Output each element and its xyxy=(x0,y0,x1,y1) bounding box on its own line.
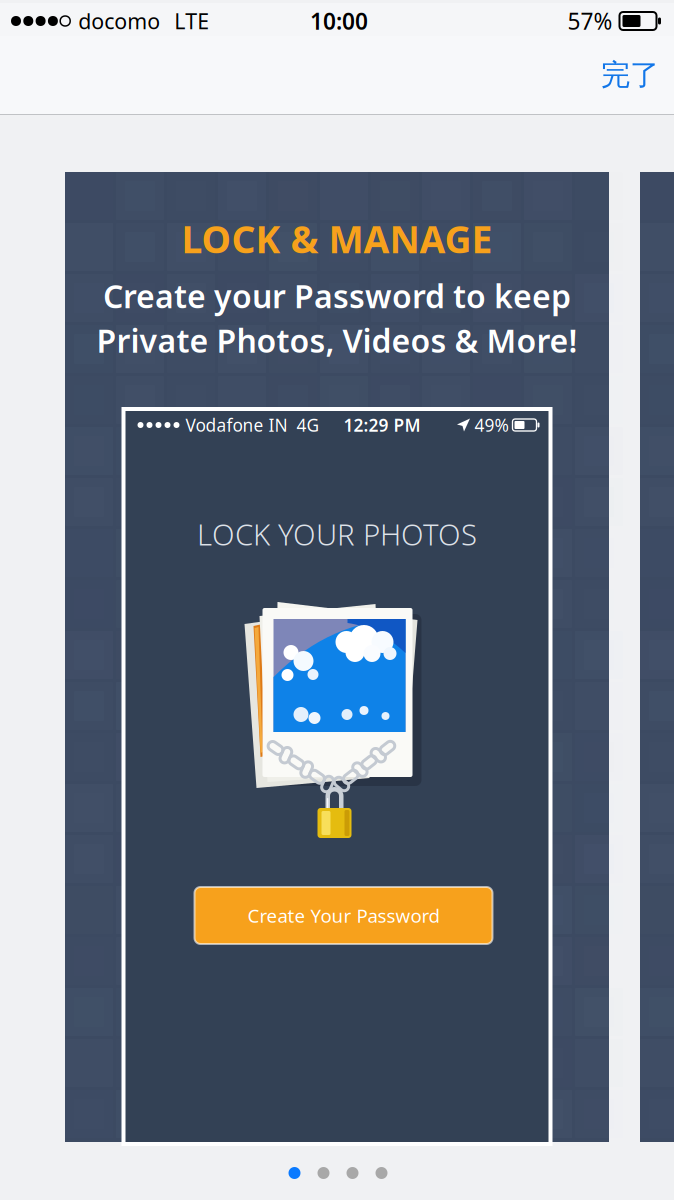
staticText: Create your Password to keep xyxy=(103,275,571,317)
button[interactable]: 完了 xyxy=(573,43,674,107)
staticText: docomo xyxy=(78,7,160,35)
staticText: LOCK YOUR PHOTOS xyxy=(197,514,477,553)
staticText: Vodafone IN xyxy=(185,413,287,436)
staticText: 10:00 xyxy=(310,6,368,36)
button[interactable]: Create Your Password xyxy=(194,887,492,944)
staticText: 12:29 PM xyxy=(343,413,420,436)
staticText: Private Photos, Videos & More! xyxy=(96,319,577,362)
staticText: LOCK & MANAGE xyxy=(181,214,492,264)
staticText: 完了 xyxy=(601,57,659,93)
staticText: Create Your Password xyxy=(247,903,439,928)
staticText: 57% xyxy=(567,6,612,36)
staticText: LTE xyxy=(174,7,209,35)
staticText: 4G xyxy=(296,413,319,436)
staticText: 49% xyxy=(474,413,508,436)
